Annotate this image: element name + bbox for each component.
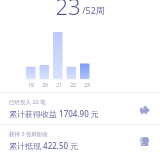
- button[interactable]: 每周攒钱柱状图: [0, 28, 160, 90]
- staticText: 累计抵现 422.50 元: [9, 140, 79, 151]
- button[interactable]: 23: [0, 0, 160, 28]
- staticText: 23: [84, 82, 90, 89]
- staticText: 20: [42, 82, 48, 89]
- other: 抵现: [137, 134, 151, 148]
- button[interactable]: 已经投入 22 笔: [0, 93, 160, 124]
- staticText: 已经投入 22 笔: [9, 98, 46, 106]
- staticText: 19: [28, 82, 34, 89]
- staticText: 获得 5 张鼓励金: [9, 130, 49, 138]
- staticText: 累计获得收益 1704.90 元: [9, 108, 99, 119]
- staticText: 22: [70, 82, 76, 89]
- staticText: 21: [56, 82, 62, 89]
- other: 收益: [137, 102, 151, 116]
- staticText: 23: [55, 0, 81, 19]
- staticText: /52周: [82, 4, 105, 16]
- button[interactable]: 获得 5 张鼓励金: [0, 125, 160, 156]
